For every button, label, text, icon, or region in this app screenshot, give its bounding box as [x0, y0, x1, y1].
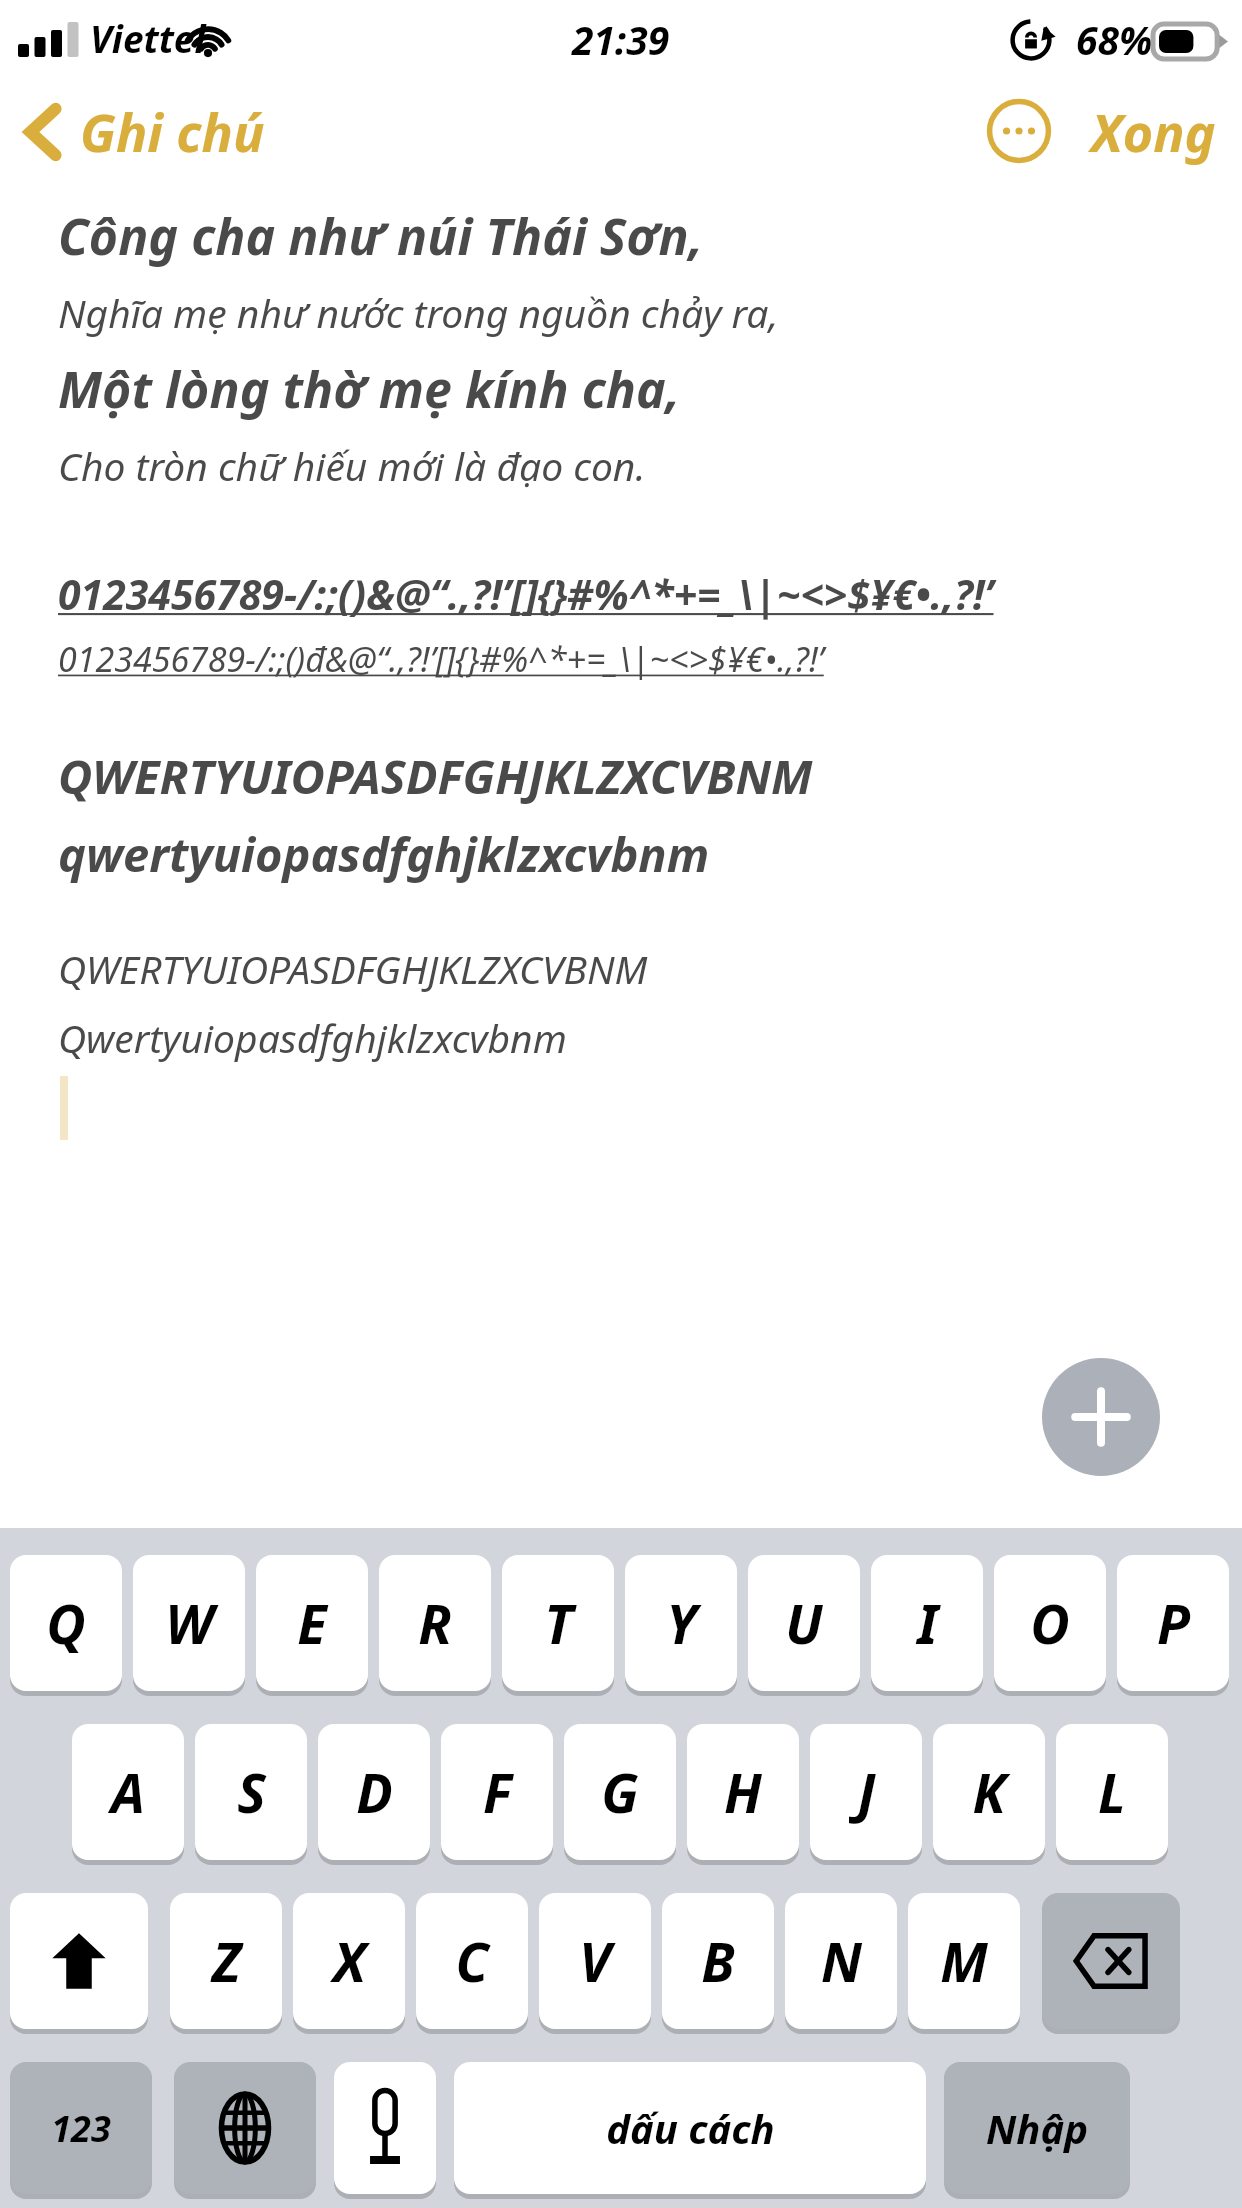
button[interactable]: R: [379, 1555, 491, 1691]
button[interactable]: N: [785, 1893, 897, 2029]
staticText: A: [111, 1755, 145, 1829]
staticText: R: [418, 1586, 452, 1660]
staticText: 0123456789-/:;()đ&@“.,?!’[]{}#%^*+=_\|~<…: [58, 636, 824, 682]
staticText: QWERTYUIOPASDFGHJKLZXCVBNM: [58, 942, 648, 995]
staticText: Nghĩa mẹ như nước trong nguồn chảy ra,: [58, 286, 779, 339]
button[interactable]: G: [564, 1724, 676, 1860]
button[interactable]: Z: [170, 1893, 282, 2029]
staticText: 0123456789-/:;()&@“.,?!’[]{}#%^*+=_\|~<>…: [58, 566, 994, 622]
button[interactable]: Nhập: [944, 2062, 1130, 2194]
staticText: K: [972, 1755, 1006, 1829]
staticText: E: [297, 1586, 327, 1660]
staticText: Ghi chú: [80, 96, 265, 167]
button[interactable]: U: [748, 1555, 860, 1691]
button[interactable]: Q: [10, 1555, 122, 1691]
staticText: F: [483, 1755, 512, 1829]
staticText: J: [857, 1755, 876, 1829]
button[interactable]: X: [293, 1893, 405, 2029]
staticText: O: [1030, 1586, 1070, 1660]
staticText: C: [455, 1924, 489, 1998]
button[interactable]: V: [539, 1893, 651, 2029]
button[interactable]: dấu cách: [454, 2062, 926, 2194]
staticText: Cho tròn chữ hiếu mới là đạo con.: [58, 439, 646, 492]
staticText: Viettel: [90, 13, 206, 63]
button[interactable]: I: [871, 1555, 983, 1691]
button[interactable]: F: [441, 1724, 553, 1860]
staticText: Z: [212, 1924, 241, 1998]
button[interactable]: Xong: [1091, 96, 1216, 167]
staticText: Y: [666, 1586, 697, 1660]
staticText: Công cha như núi Thái Sơn,: [58, 202, 704, 270]
button[interactable]: Switch keyboard: [174, 2062, 316, 2194]
staticText: Nhập: [986, 2101, 1088, 2155]
staticText: T: [544, 1586, 573, 1660]
staticText: N: [821, 1924, 862, 1998]
staticText: L: [1098, 1755, 1126, 1829]
staticText: W: [165, 1586, 214, 1660]
button[interactable]: K: [933, 1724, 1045, 1860]
staticText: I: [917, 1586, 938, 1660]
staticText: P: [1157, 1586, 1190, 1660]
staticText: 21:39: [572, 13, 670, 66]
button[interactable]: Add attachment: [1042, 1358, 1160, 1476]
staticText: V: [579, 1924, 611, 1998]
staticText: D: [356, 1755, 393, 1829]
button[interactable]: D: [318, 1724, 430, 1860]
staticText: qwertyuiopasdfghjklzxcvbnm: [58, 822, 710, 886]
button[interactable]: W: [133, 1555, 245, 1691]
button[interactable]: More options: [983, 95, 1055, 167]
button[interactable]: Numbers: [10, 2062, 152, 2194]
button[interactable]: B: [662, 1893, 774, 2029]
button[interactable]: M: [908, 1893, 1020, 2029]
button[interactable]: A: [72, 1724, 184, 1860]
staticText: X: [333, 1924, 366, 1998]
button[interactable]: Y: [625, 1555, 737, 1691]
button[interactable]: E: [256, 1555, 368, 1691]
staticText: Qwertyuiopasdfghjklzxcvbnm: [58, 1011, 567, 1064]
staticText: 123: [51, 2104, 111, 2153]
staticText: G: [601, 1755, 639, 1829]
staticText: U: [785, 1586, 823, 1660]
staticText: QWERTYUIOPASDFGHJKLZXCVBNM: [58, 744, 813, 808]
button[interactable]: Ghi chú: [22, 96, 265, 167]
staticText: M: [940, 1924, 988, 1998]
button[interactable]: J: [810, 1724, 922, 1860]
button[interactable]: Backspace: [1042, 1893, 1180, 2029]
staticText: H: [724, 1755, 762, 1829]
button[interactable]: L: [1056, 1724, 1168, 1860]
button[interactable]: S: [195, 1724, 307, 1860]
button[interactable]: C: [416, 1893, 528, 2029]
staticText: 68%: [1076, 13, 1153, 66]
button[interactable]: Shift: [10, 1893, 148, 2029]
button[interactable]: Dictate: [334, 2062, 436, 2194]
button[interactable]: H: [687, 1724, 799, 1860]
button[interactable]: T: [502, 1555, 614, 1691]
button[interactable]: O: [994, 1555, 1106, 1691]
staticText: Xong: [1091, 96, 1216, 167]
staticText: S: [237, 1755, 266, 1829]
staticText: B: [701, 1924, 735, 1998]
staticText: dấu cách: [606, 2101, 775, 2155]
staticText: Một lòng thờ mẹ kính cha,: [58, 355, 680, 423]
staticText: Q: [46, 1586, 86, 1660]
button[interactable]: P: [1117, 1555, 1229, 1691]
